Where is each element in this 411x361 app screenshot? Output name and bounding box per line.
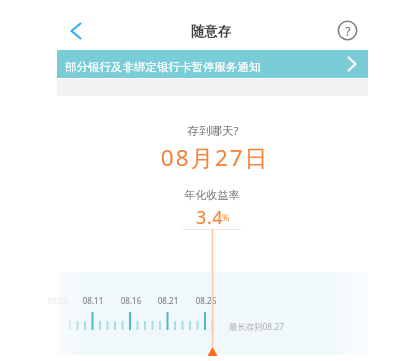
staticText: 存到哪天? — [63, 123, 363, 139]
button[interactable]: Back — [62, 17, 90, 45]
staticText: % — [222, 212, 230, 224]
staticText: ? — [345, 22, 351, 40]
staticText: 部分银行及非绑定银行卡暂停服务通知 — [65, 60, 261, 74]
staticText: 最长存到08.27 — [229, 321, 285, 332]
staticText: 08.06 — [33, 295, 83, 306]
staticText: 年化收益率 — [62, 188, 362, 202]
button[interactable]: Help — [334, 17, 361, 44]
button[interactable]: 部分银行及非绑定银行卡暂停服务通知 — [57, 50, 368, 78]
staticText: 3.4 — [196, 205, 224, 230]
staticText: 08.21 — [143, 295, 193, 306]
staticText: 随意存 — [61, 23, 361, 40]
staticText: 08月27日 — [65, 142, 365, 173]
staticText: 08.26 — [181, 295, 231, 306]
staticText: 08.16 — [106, 295, 156, 306]
staticText: 08.11 — [68, 295, 118, 306]
